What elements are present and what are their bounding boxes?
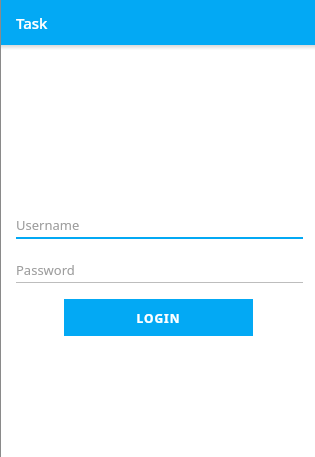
- staticText: Username: [16, 216, 80, 234]
- button[interactable]: Password: [16, 260, 303, 283]
- button[interactable]: Username: [16, 215, 303, 239]
- staticText: Task: [16, 13, 48, 33]
- button[interactable]: LOGIN: [64, 299, 253, 336]
- staticText: LOGIN: [136, 310, 181, 326]
- staticText: Password: [16, 261, 75, 279]
